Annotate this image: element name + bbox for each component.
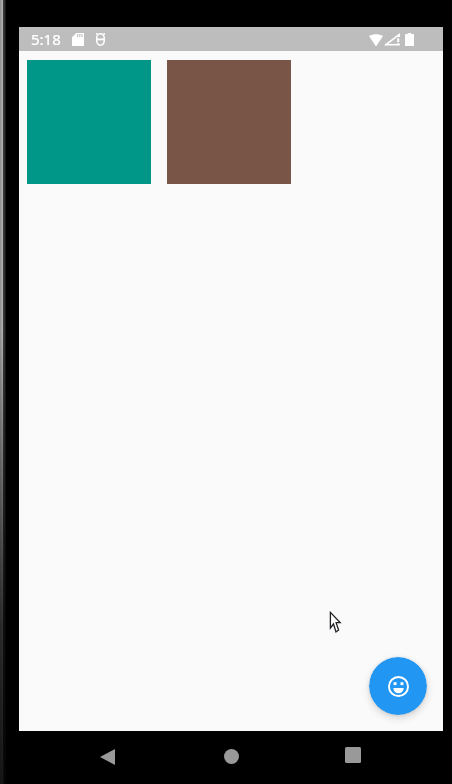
button[interactable]: Recent apps — [333, 735, 373, 775]
button[interactable]: Back — [87, 736, 128, 778]
button[interactable]: Home — [211, 736, 251, 776]
staticText: 5:18 — [31, 29, 61, 49]
button[interactable]: Add mood — [369, 657, 427, 715]
